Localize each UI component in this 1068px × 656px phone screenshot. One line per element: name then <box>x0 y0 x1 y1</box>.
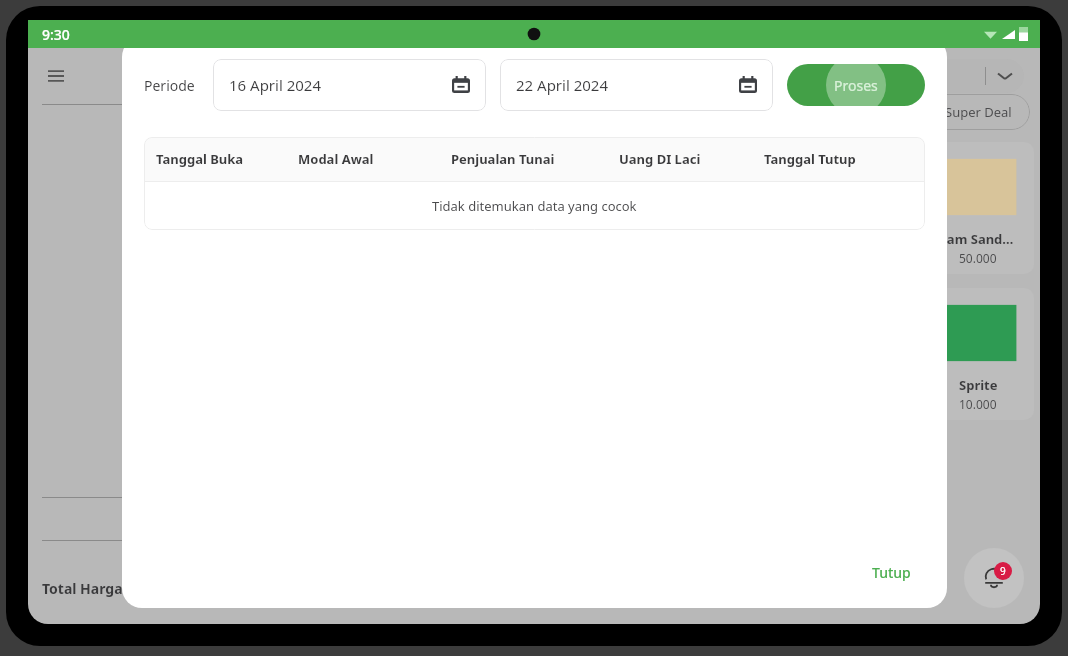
other: Pick date <box>739 76 757 94</box>
button[interactable]: Super Deal <box>926 94 1030 130</box>
staticText: 50.000 <box>959 250 997 266</box>
button[interactable]: Menu <box>42 62 70 90</box>
staticText: Tidak ditemukan data yang cocok <box>432 197 637 215</box>
staticText: 10.000 <box>959 396 997 412</box>
staticText: 16 April 2024 <box>229 75 322 95</box>
staticText: Proses <box>834 76 878 95</box>
staticText: Tutup <box>872 563 911 582</box>
staticText: Tanggal Buka <box>156 150 244 168</box>
staticText: lam Sand… <box>943 230 1014 248</box>
staticText: Tanggal Tutup <box>764 150 856 168</box>
staticText: Uang DI Laci <box>619 150 701 168</box>
staticText: Penjualan Tunai <box>451 150 555 168</box>
button[interactable]: Sprite <box>922 288 1034 420</box>
button[interactable]: 22 April 2024 <box>500 59 773 111</box>
staticText: Super Deal <box>945 103 1012 121</box>
other: Pick date <box>452 76 470 94</box>
button[interactable]: Tutup <box>858 555 925 590</box>
button[interactable] <box>787 64 925 106</box>
staticText: 9:30 <box>42 25 70 44</box>
staticText: 22 April 2024 <box>516 75 609 95</box>
staticText: Total Harga <box>42 579 123 598</box>
staticText: 9 <box>1000 564 1006 578</box>
button[interactable]: lam Sand… <box>922 142 1034 274</box>
staticText: Modal Awal <box>298 150 374 168</box>
button[interactable]: Dropdown <box>904 59 1024 93</box>
staticText: Periode <box>144 76 195 95</box>
button[interactable]: 16 April 2024 <box>213 59 486 111</box>
staticText: Sprite <box>959 376 998 394</box>
button[interactable]: Notifications <box>964 548 1024 608</box>
